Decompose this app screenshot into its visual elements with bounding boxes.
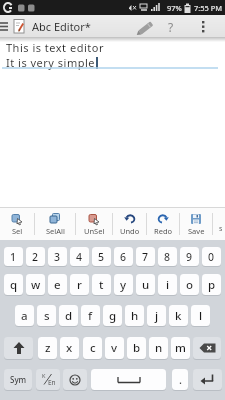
staticText: i bbox=[166, 277, 170, 293]
staticText: ? bbox=[168, 19, 174, 35]
button[interactable] bbox=[193, 369, 222, 390]
staticText: Undo bbox=[120, 226, 140, 236]
button[interactable]: p bbox=[202, 274, 221, 295]
button[interactable]: k bbox=[169, 305, 188, 326]
button[interactable]: e bbox=[48, 274, 67, 295]
button[interactable] bbox=[4, 337, 33, 359]
staticText: . bbox=[179, 372, 182, 387]
button[interactable]: o bbox=[180, 274, 199, 295]
button[interactable]: x bbox=[60, 337, 79, 359]
button[interactable]: q bbox=[4, 274, 23, 295]
staticText: z bbox=[45, 340, 51, 356]
staticText: y bbox=[120, 277, 127, 293]
staticText: g bbox=[109, 308, 117, 324]
staticText: r bbox=[77, 277, 82, 293]
staticText: u bbox=[142, 277, 150, 293]
staticText: Sel bbox=[12, 226, 23, 236]
button[interactable] bbox=[198, 15, 212, 38]
staticText: q bbox=[10, 277, 18, 293]
staticText: k bbox=[175, 308, 182, 324]
staticText: UnSel bbox=[84, 226, 105, 236]
button[interactable]: d bbox=[59, 305, 78, 326]
staticText: 6 bbox=[120, 250, 127, 264]
staticText: o bbox=[186, 277, 194, 293]
button[interactable]: ? bbox=[163, 15, 179, 38]
staticText: c bbox=[90, 340, 96, 356]
staticText: j bbox=[155, 308, 159, 324]
staticText: h bbox=[131, 308, 139, 324]
staticText: t bbox=[99, 277, 104, 293]
button[interactable]: f bbox=[81, 305, 100, 326]
button[interactable]: m bbox=[171, 337, 190, 359]
button[interactable]: g bbox=[103, 305, 122, 326]
staticText: Redo bbox=[154, 226, 173, 236]
button[interactable]: z bbox=[38, 337, 57, 359]
staticText: This is text editor bbox=[6, 40, 104, 55]
button[interactable]: 9 bbox=[180, 247, 199, 266]
staticText: m bbox=[175, 340, 186, 356]
button[interactable]: 4 bbox=[70, 247, 89, 266]
button[interactable]: 7 bbox=[136, 247, 155, 266]
button[interactable]: . bbox=[172, 369, 188, 390]
staticText: e bbox=[54, 277, 61, 293]
button[interactable]: y bbox=[114, 274, 133, 295]
button[interactable] bbox=[0, 15, 10, 38]
button[interactable] bbox=[193, 337, 221, 359]
button[interactable]: h bbox=[125, 305, 144, 326]
button[interactable]: b bbox=[127, 337, 146, 359]
staticText: K bbox=[42, 372, 46, 379]
staticText: 3 bbox=[54, 250, 61, 264]
button[interactable]: Save bbox=[180, 208, 212, 240]
button[interactable]: 1 bbox=[4, 247, 23, 266]
button[interactable]: 8 bbox=[158, 247, 177, 266]
staticText: Save bbox=[188, 226, 205, 236]
button[interactable]: Sel bbox=[0, 208, 34, 240]
button[interactable]: s bbox=[213, 208, 225, 240]
button[interactable]: w bbox=[26, 274, 45, 295]
staticText: f bbox=[88, 308, 93, 324]
button[interactable]: t bbox=[92, 274, 111, 295]
staticText: 4 bbox=[76, 250, 83, 264]
button[interactable]: Undo bbox=[113, 208, 146, 240]
button[interactable]: 2 bbox=[26, 247, 45, 266]
staticText: 9 bbox=[186, 250, 193, 264]
staticText: 7:55 PM bbox=[194, 3, 223, 13]
staticText: v bbox=[111, 340, 118, 356]
button[interactable] bbox=[91, 369, 166, 390]
staticText: 2 bbox=[32, 250, 39, 264]
button[interactable]: 3 bbox=[48, 247, 67, 266]
staticText: s bbox=[219, 224, 223, 234]
staticText: 0 bbox=[208, 250, 215, 264]
button[interactable]: 5 bbox=[92, 247, 111, 266]
staticText: SelAll bbox=[46, 226, 65, 236]
button[interactable] bbox=[135, 15, 159, 38]
button[interactable]: n bbox=[149, 337, 168, 359]
button[interactable]: SelAll bbox=[35, 208, 75, 240]
button[interactable]: K bbox=[36, 369, 60, 390]
staticText: 5 bbox=[98, 250, 105, 264]
button[interactable]: a bbox=[15, 305, 34, 326]
button[interactable]: u bbox=[136, 274, 155, 295]
button[interactable] bbox=[63, 369, 87, 390]
button[interactable]: c bbox=[83, 337, 102, 359]
button[interactable]: l bbox=[191, 305, 210, 326]
button[interactable]: v bbox=[105, 337, 124, 359]
button[interactable]: r bbox=[70, 274, 89, 295]
staticText: Abc Editor* bbox=[32, 19, 91, 34]
button[interactable]: Sym bbox=[4, 369, 32, 390]
button[interactable]: Redo bbox=[147, 208, 179, 240]
button[interactable]: s bbox=[37, 305, 56, 326]
staticText: w bbox=[31, 277, 41, 293]
button[interactable]: UnSel bbox=[76, 208, 112, 240]
staticText: b bbox=[133, 340, 141, 356]
staticText: 1 bbox=[10, 250, 17, 264]
staticText: En bbox=[48, 378, 56, 387]
button[interactable]: 0 bbox=[202, 247, 221, 266]
staticText: 8 bbox=[164, 250, 171, 264]
staticText: p bbox=[208, 277, 216, 293]
staticText: x bbox=[66, 340, 73, 356]
button[interactable]: j bbox=[147, 305, 166, 326]
staticText: l bbox=[199, 308, 203, 324]
button[interactable]: i bbox=[158, 274, 177, 295]
button[interactable]: 6 bbox=[114, 247, 133, 266]
